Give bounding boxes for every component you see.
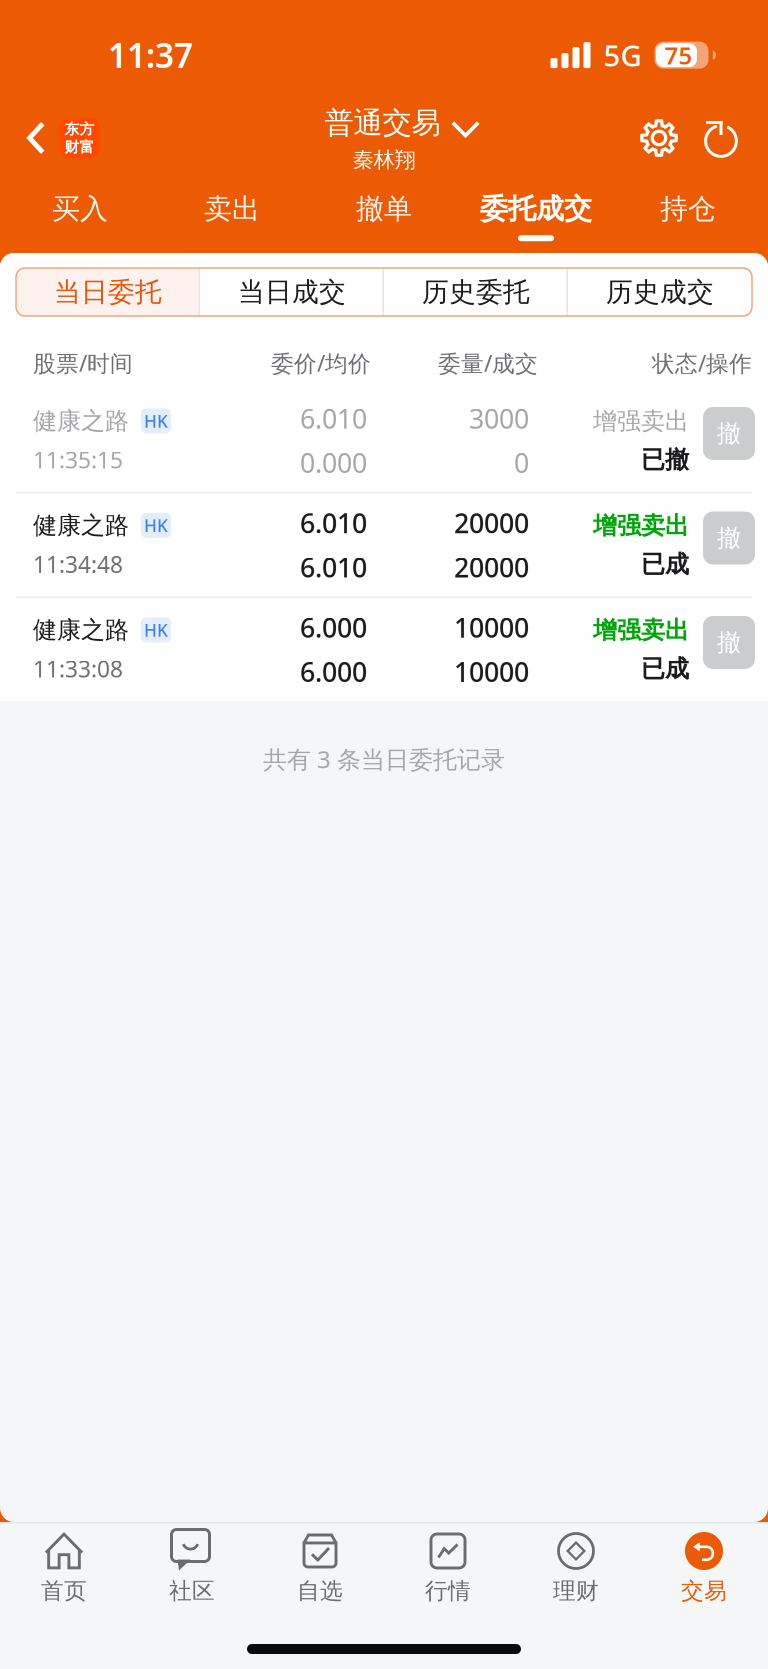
staticText: 健康之路 (33, 615, 129, 645)
staticText: 状态/操作 (652, 348, 752, 378)
staticText: 股票/时间 (33, 348, 133, 378)
staticText: 3000 (469, 401, 529, 436)
staticText: 财富 (64, 138, 94, 156)
button[interactable]: 撤单 (703, 511, 755, 564)
staticText: 理财 (553, 1577, 599, 1605)
button[interactable]: 行情 (384, 1515, 512, 1630)
staticText: 历史成交 (606, 276, 714, 308)
staticText: 10000 (454, 654, 529, 689)
staticText: 10000 (454, 610, 529, 645)
staticText: 持仓 (660, 192, 716, 226)
button[interactable]: 健康之路 (0, 598, 768, 701)
staticText: 20000 (454, 505, 529, 540)
staticText: 秦林翔 (352, 147, 415, 173)
staticText: 6.010 (300, 401, 367, 436)
staticText: 当日成交 (238, 276, 346, 308)
staticText: 行情 (425, 1577, 471, 1605)
staticText: 委托成交 (480, 192, 592, 226)
staticText: 当日委托 (54, 276, 162, 308)
staticText: 75 (664, 39, 692, 71)
button[interactable]: 买入 (4, 180, 156, 253)
staticText: 交易 (681, 1577, 727, 1605)
staticText: 共有 3 条当日委托记录 (263, 743, 505, 775)
staticText: 已成 (641, 654, 689, 683)
staticText: 已撤 (641, 445, 689, 474)
staticText: 6.000 (300, 654, 367, 689)
staticText: 卖出 (204, 192, 260, 226)
staticText: 11:33:08 (33, 654, 123, 684)
button[interactable]: 首页 (0, 1515, 128, 1630)
staticText: 增强卖出 (593, 406, 689, 436)
staticText: 11:34:48 (33, 549, 123, 579)
button[interactable]: 交易 (640, 1515, 768, 1630)
staticText: 11:37 (108, 33, 193, 77)
button[interactable]: 设置 (628, 102, 690, 174)
staticText: HK (144, 409, 168, 432)
staticText: 撤单 (356, 192, 412, 226)
button[interactable]: 普通交易 (292, 99, 475, 177)
button[interactable]: 当日委托 (16, 268, 200, 316)
button[interactable]: 自选 (256, 1515, 384, 1630)
staticText: 6.000 (300, 610, 367, 645)
staticText: 6.010 (300, 549, 367, 585)
button[interactable]: 持仓 (612, 180, 764, 253)
staticText: 委量/成交 (438, 348, 538, 378)
button[interactable]: 健康之路 (0, 493, 768, 596)
button[interactable]: 历史成交 (568, 268, 752, 316)
staticText: 增强卖出 (593, 615, 689, 645)
staticText: HK (144, 618, 168, 641)
staticText: HK (144, 514, 168, 537)
button[interactable]: 委托成交 (460, 180, 612, 253)
staticText: 健康之路 (33, 406, 129, 436)
button[interactable]: 撤单 (703, 616, 755, 669)
button[interactable]: 健康之路 (0, 389, 768, 492)
staticText: 已成 (641, 549, 689, 579)
staticText: 5G (603, 36, 641, 75)
staticText: 增强卖出 (593, 511, 689, 540)
staticText: 历史委托 (422, 276, 530, 308)
staticText: 东方 (64, 120, 94, 138)
button[interactable]: 当日成交 (200, 268, 384, 316)
button[interactable]: 社区 (128, 1515, 256, 1630)
staticText: 20000 (454, 549, 529, 585)
staticText: 6.010 (300, 505, 367, 540)
staticText: 委价/均价 (271, 348, 371, 378)
button[interactable]: 卖出 (156, 180, 308, 253)
staticText: 撤 (717, 419, 741, 448)
staticText: 0 (514, 445, 529, 480)
staticText: 首页 (41, 1577, 87, 1605)
button[interactable]: 撤单 (703, 407, 755, 460)
staticText: 买入 (52, 192, 108, 226)
button[interactable]: 返回 东方财富 (0, 96, 100, 180)
button[interactable]: 刷新 (690, 102, 752, 174)
staticText: 撤 (717, 523, 741, 553)
staticText: 0.000 (300, 445, 367, 480)
staticText: 11:35:15 (33, 445, 123, 475)
button[interactable]: 撤单 (308, 180, 460, 253)
staticText: 撤 (717, 628, 741, 657)
staticText: 自选 (297, 1577, 343, 1605)
button[interactable]: 历史委托 (384, 268, 568, 316)
staticText: 普通交易 (324, 105, 440, 141)
staticText: 社区 (169, 1577, 215, 1605)
button[interactable]: 理财 (512, 1515, 640, 1630)
staticText: 健康之路 (33, 511, 129, 540)
